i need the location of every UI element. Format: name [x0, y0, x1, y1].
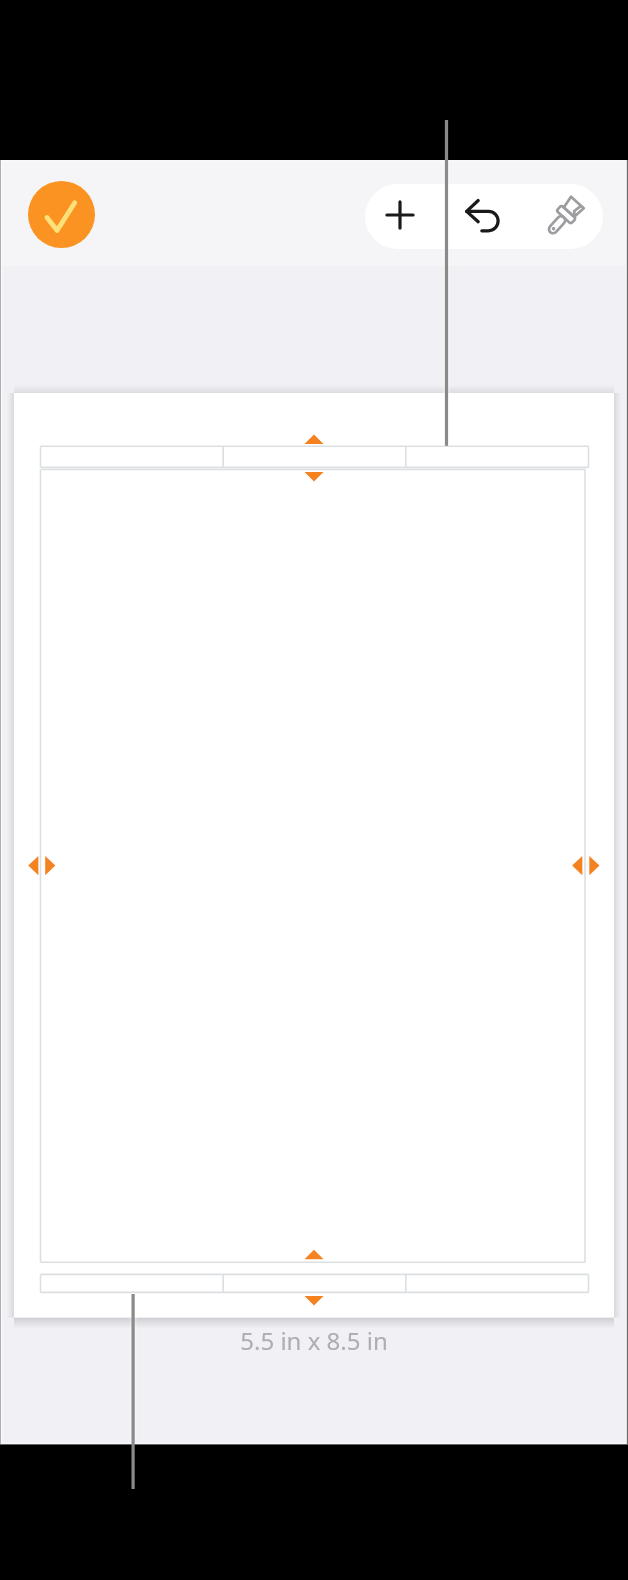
- button[interactable]: Insert: [365, 182, 434, 247]
- button[interactable]: Undo: [442, 182, 522, 247]
- staticText: 5.5 in x 8.5 in: [0, 1324, 628, 1357]
- button[interactable]: Done: [28, 181, 95, 248]
- button[interactable]: Format: [525, 184, 603, 249]
